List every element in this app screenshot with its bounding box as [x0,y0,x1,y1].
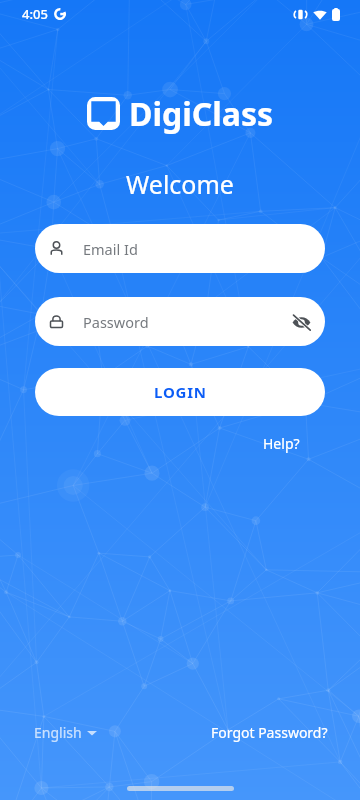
button[interactable]: Help? [259,430,304,457]
staticText: Welcome [0,167,360,201]
staticText: DigiClass [129,92,274,136]
staticText: Password [83,312,149,332]
staticText: LOGIN [154,382,207,402]
staticText: English [34,723,82,742]
button[interactable]: Password [35,297,325,346]
button[interactable]: Email Id [35,224,325,273]
button[interactable]: Show password [289,310,313,334]
button[interactable]: LOGIN [35,368,325,416]
button[interactable]: English [30,720,101,745]
staticText: Email Id [83,239,138,259]
button[interactable]: Forgot Password? [207,720,332,745]
staticText: 4:05 [22,5,48,23]
staticText: Help? [263,434,300,453]
staticText: Forgot Password? [211,723,328,742]
